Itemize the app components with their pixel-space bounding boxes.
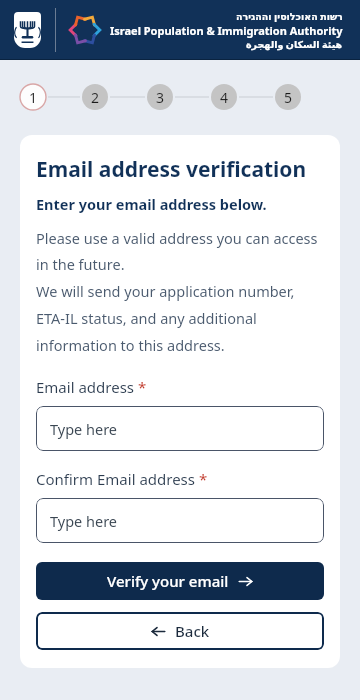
staticText: Email address * bbox=[36, 377, 147, 397]
staticText: Type here bbox=[50, 511, 118, 531]
staticText: هيئة السكان والهجرة bbox=[246, 38, 343, 51]
staticText: 4 bbox=[220, 88, 229, 107]
staticText: Confirm Email address * bbox=[36, 469, 208, 489]
button[interactable]: Back bbox=[36, 612, 324, 650]
staticText: Please use a valid address you can acces… bbox=[36, 228, 324, 355]
button[interactable]: Type here bbox=[36, 406, 324, 451]
staticText: Israel Population & Immigration Authorit… bbox=[110, 23, 343, 38]
staticText: רשות האוכלוסין וההגירה bbox=[236, 10, 343, 23]
staticText: 3 bbox=[156, 88, 165, 107]
staticText: 5 bbox=[284, 88, 293, 107]
staticText: 1 bbox=[29, 88, 38, 107]
staticText: Back bbox=[175, 621, 210, 641]
staticText: Type here bbox=[50, 419, 118, 439]
staticText: Email address verification bbox=[36, 155, 307, 184]
button[interactable]: Type here bbox=[36, 498, 324, 543]
staticText: 2 bbox=[91, 88, 100, 107]
button[interactable]: Verify your email bbox=[36, 562, 324, 600]
staticText: Enter your email address below. bbox=[36, 194, 267, 214]
staticText: Verify your email bbox=[107, 571, 229, 591]
